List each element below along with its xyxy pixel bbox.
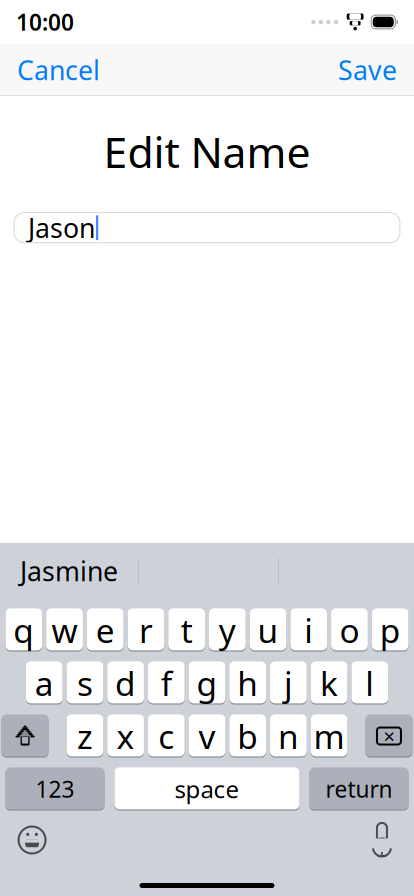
button[interactable]: a xyxy=(26,662,63,704)
staticText: v xyxy=(198,714,215,758)
button[interactable]: j xyxy=(270,662,307,704)
button[interactable]: b xyxy=(229,715,266,757)
button[interactable]: 123 xyxy=(5,768,104,810)
button[interactable]: s xyxy=(67,662,103,704)
staticText: l xyxy=(365,661,374,705)
button[interactable]: o xyxy=(331,609,368,651)
staticText: a xyxy=(35,661,54,705)
button[interactable]: space xyxy=(114,768,299,810)
button[interactable]: Emoji xyxy=(7,815,57,865)
staticText: e xyxy=(96,608,115,652)
button[interactable]: Cancel xyxy=(4,42,113,98)
staticText: f xyxy=(161,661,172,705)
button[interactable]: l xyxy=(351,662,388,704)
button[interactable]: t xyxy=(168,609,205,651)
staticText: k xyxy=(320,661,338,705)
button[interactable]: f xyxy=(148,662,185,704)
staticText: c xyxy=(158,714,174,758)
button[interactable]: i xyxy=(290,609,327,651)
button[interactable]: p xyxy=(372,609,408,651)
staticText: w xyxy=(52,608,78,652)
staticText: 10:00 xyxy=(16,7,74,37)
button[interactable]: Save xyxy=(325,42,410,98)
staticText: y xyxy=(219,608,236,652)
button[interactable]: Jasmine xyxy=(0,548,138,593)
staticText: Save xyxy=(338,52,397,88)
staticText: i xyxy=(304,608,313,652)
button[interactable]: g xyxy=(189,662,225,704)
staticText: p xyxy=(380,608,401,652)
staticText: Jasmine xyxy=(20,553,118,589)
button[interactable]: return xyxy=(309,768,408,810)
button[interactable]: z xyxy=(67,715,103,757)
button[interactable]: r xyxy=(128,609,164,651)
button[interactable]: x xyxy=(107,715,144,757)
staticText: h xyxy=(237,661,258,705)
staticText: d xyxy=(115,661,136,705)
button[interactable]: e xyxy=(87,609,124,651)
staticText: × xyxy=(383,723,394,749)
staticText: 123 xyxy=(35,774,74,804)
button[interactable]: Shift xyxy=(2,715,49,757)
staticText: o xyxy=(339,608,359,652)
button[interactable]: h xyxy=(229,662,266,704)
staticText: b xyxy=(237,714,258,758)
staticText: x xyxy=(117,714,135,758)
staticText: q xyxy=(13,608,34,652)
staticText: return xyxy=(325,774,392,804)
staticText: u xyxy=(258,608,279,652)
staticText: n xyxy=(278,714,299,758)
button[interactable]: y xyxy=(209,609,246,651)
button[interactable]: Delete xyxy=(365,715,412,757)
staticText: t xyxy=(181,608,193,652)
button[interactable]: m xyxy=(311,715,347,757)
button[interactable]: n xyxy=(270,715,307,757)
button[interactable]: k xyxy=(311,662,347,704)
staticText: space xyxy=(174,773,239,805)
button[interactable]: Dictation xyxy=(357,815,407,865)
button[interactable]: q xyxy=(5,609,42,651)
staticText: s xyxy=(77,661,93,705)
staticText: Cancel xyxy=(17,52,100,88)
staticText: m xyxy=(314,714,345,758)
staticText: r xyxy=(139,608,153,652)
staticText: j xyxy=(284,661,293,705)
button[interactable]: u xyxy=(250,609,286,651)
staticText: Edit Name xyxy=(103,123,310,180)
button[interactable]: c xyxy=(148,715,185,757)
button[interactable]: v xyxy=(189,715,225,757)
staticText: g xyxy=(196,661,217,705)
staticText: z xyxy=(77,714,93,758)
button[interactable]: w xyxy=(46,609,83,651)
button[interactable]: d xyxy=(107,662,144,704)
staticText: Jason xyxy=(28,210,95,245)
